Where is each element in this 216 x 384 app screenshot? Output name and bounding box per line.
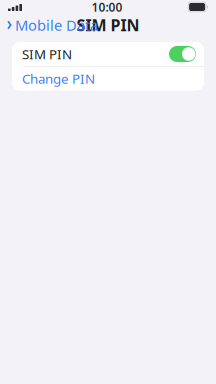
staticText: SIM PIN [22, 45, 72, 63]
button[interactable]: Mobile Data [0, 11, 98, 39]
staticText: Mobile Data [15, 15, 98, 35]
button[interactable]: SIM PIN [169, 46, 196, 62]
staticText: 10:00 [91, 0, 122, 15]
staticText: Change PIN [22, 70, 95, 87]
button[interactable]: Change PIN [12, 67, 204, 91]
staticText: SIM PIN [76, 14, 139, 36]
